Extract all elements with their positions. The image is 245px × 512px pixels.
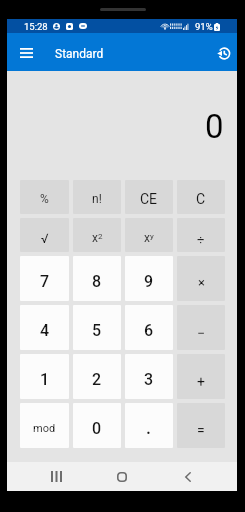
staticText: 5 (92, 321, 102, 340)
button[interactable]: = (177, 403, 225, 448)
staticText: × (198, 275, 205, 290)
button[interactable]: − (177, 305, 225, 350)
staticText: 8 (92, 272, 102, 291)
staticText: n! (92, 192, 102, 206)
button[interactable]: √ (20, 218, 69, 252)
staticText: x2 (92, 231, 103, 245)
staticText: xy (144, 231, 154, 245)
staticText: = (197, 422, 205, 438)
staticText: 0 (92, 419, 102, 438)
button[interactable]: Open navigation menu (13, 40, 39, 66)
staticText: mod (33, 422, 56, 435)
button[interactable]: ÷ (177, 218, 225, 252)
button[interactable]: 1 (20, 354, 69, 399)
button[interactable]: . (125, 403, 173, 448)
staticText: − (197, 325, 206, 341)
staticText: CE (140, 191, 158, 207)
staticText: 3 (144, 370, 154, 389)
staticText: 7 (40, 272, 50, 291)
staticText: % (40, 192, 49, 206)
staticText: 1 (40, 370, 50, 389)
button[interactable]: 5 (73, 305, 121, 350)
button[interactable]: CE (125, 180, 173, 214)
button[interactable]: C (177, 180, 225, 214)
staticText: 91% (195, 21, 213, 32)
staticText: 2 (92, 370, 102, 389)
button[interactable]: × (177, 256, 225, 301)
button[interactable]: 4 (20, 305, 69, 350)
button[interactable]: Recent apps (39, 462, 73, 491)
button[interactable]: xy (125, 218, 173, 252)
staticText: 9 (144, 272, 154, 291)
button[interactable]: % (20, 180, 69, 214)
staticText: Standard (55, 47, 104, 61)
button[interactable]: mod (20, 403, 69, 448)
staticText: . (146, 417, 152, 438)
staticText: 4 (40, 321, 50, 340)
staticText: √ (41, 231, 49, 246)
staticText: + (197, 374, 205, 390)
button[interactable]: 2 (73, 354, 121, 399)
button[interactable]: 9 (125, 256, 173, 301)
button[interactable]: + (177, 354, 225, 399)
button[interactable]: Back (171, 462, 205, 491)
button[interactable]: 0 (7, 71, 237, 180)
button[interactable]: Home (105, 462, 139, 491)
staticText: 15:28 (24, 21, 48, 32)
button[interactable]: x2 (73, 218, 121, 252)
staticText: 0 (205, 107, 224, 146)
button[interactable]: 8 (73, 256, 121, 301)
button[interactable]: 3 (125, 354, 173, 399)
staticText: ÷ (197, 232, 205, 247)
staticText: 6 (144, 321, 154, 340)
button[interactable]: 7 (20, 256, 69, 301)
button[interactable]: n! (73, 180, 121, 214)
button[interactable]: History (210, 40, 236, 66)
button[interactable]: 6 (125, 305, 173, 350)
button[interactable]: 0 (73, 403, 121, 448)
staticText: C (196, 191, 206, 207)
